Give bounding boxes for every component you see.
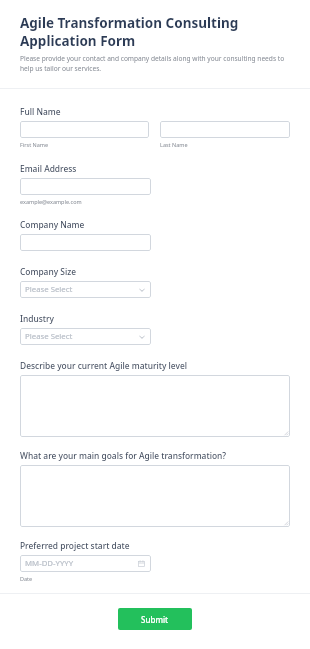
staticText: Preferred project start date (20, 540, 130, 551)
staticText: Company Name (20, 219, 85, 230)
staticText: Please Select (25, 331, 73, 342)
button[interactable] (20, 375, 290, 437)
button[interactable]: MM-DD-YYYY (20, 555, 151, 572)
staticText: Submit (141, 614, 169, 625)
staticText: example@example.com (20, 198, 82, 205)
button[interactable] (160, 121, 290, 138)
staticText: First Name (20, 141, 49, 148)
staticText: Industry (20, 313, 54, 324)
staticText: Describe your current Agile maturity lev… (20, 360, 187, 371)
staticText: Full Name (20, 106, 61, 117)
button[interactable] (20, 178, 151, 195)
button[interactable]: Please Select (20, 281, 151, 298)
staticText: Company Size (20, 266, 76, 277)
staticText: Email Address (20, 163, 77, 174)
button[interactable]: Please Select (20, 328, 151, 345)
staticText: Last Name (160, 141, 188, 148)
staticText: Please Select (25, 284, 73, 295)
staticText: MM-DD-YYYY (25, 558, 74, 569)
staticText: Application Form (20, 32, 136, 50)
other: Open calendar (138, 560, 145, 567)
button[interactable]: Submit (118, 608, 192, 630)
button[interactable] (20, 121, 149, 138)
staticText: Agile Transformation Consulting (20, 14, 239, 32)
staticText: Date (20, 575, 33, 582)
staticText: What are your main goals for Agile trans… (20, 450, 227, 461)
button[interactable] (20, 465, 290, 527)
button[interactable] (20, 234, 151, 251)
staticText: Please provide your contact and company … (20, 54, 290, 73)
